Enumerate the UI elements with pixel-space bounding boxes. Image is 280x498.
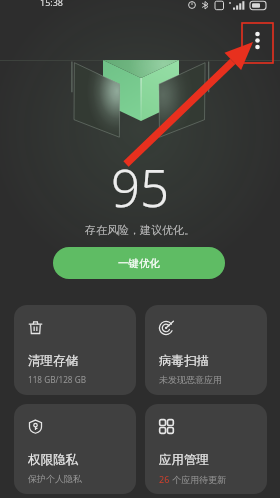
staticText: 个应用待更新	[170, 473, 227, 485]
button[interactable]: More options	[243, 24, 272, 62]
staticText: 权限隐私	[28, 452, 78, 468]
staticText: 15:38	[40, 0, 64, 8]
button[interactable]: 应用管理	[145, 404, 267, 494]
staticText: 病毒扫描	[159, 353, 209, 369]
staticText: 存在风险，建议优化。	[85, 223, 195, 237]
staticText: 26	[159, 473, 170, 485]
button[interactable]: 权限隐私	[14, 404, 136, 494]
staticText: 95	[111, 152, 170, 221]
button[interactable]: 病毒扫描	[145, 305, 267, 395]
staticText: 一键优化	[118, 257, 160, 270]
staticText: 118 GB/128 GB	[28, 374, 86, 385]
button[interactable]: 清理存储	[14, 305, 136, 395]
staticText: 清理存储	[28, 353, 78, 369]
staticText: 应用管理	[159, 452, 209, 468]
staticText: 保护个人隐私	[28, 473, 82, 484]
button[interactable]: 一键优化	[53, 247, 225, 279]
staticText: 未发现恶意应用	[159, 374, 222, 385]
